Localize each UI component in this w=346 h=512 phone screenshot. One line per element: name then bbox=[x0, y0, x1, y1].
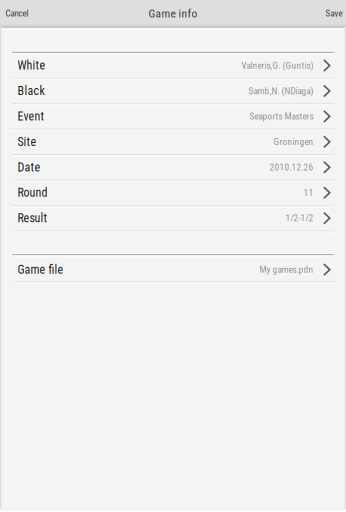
staticText: Samb,N. (NDiaga) bbox=[249, 85, 314, 96]
staticText: Round bbox=[18, 186, 48, 200]
staticText: Valneris,G. (Guntis) bbox=[242, 60, 314, 71]
staticText: My games.pdn bbox=[260, 264, 314, 275]
button[interactable]: Event bbox=[0, 104, 346, 129]
button[interactable]: Site bbox=[0, 129, 346, 154]
staticText: Game info bbox=[148, 7, 197, 20]
staticText: 11 bbox=[304, 187, 314, 198]
button[interactable]: Game file bbox=[0, 256, 346, 283]
staticText: 1/2-1/2 bbox=[286, 213, 314, 224]
staticText: Seaports Masters bbox=[250, 111, 314, 122]
staticText: Date bbox=[18, 160, 41, 174]
staticText: Black bbox=[18, 84, 45, 98]
staticText: Save bbox=[326, 8, 343, 19]
staticText: Game file bbox=[18, 263, 64, 277]
button[interactable]: Save bbox=[320, 0, 346, 27]
staticText: Cancel bbox=[5, 8, 28, 19]
button[interactable]: Date bbox=[0, 155, 346, 180]
staticText: Groningen bbox=[274, 136, 314, 147]
staticText: Result bbox=[18, 211, 48, 225]
button[interactable]: Round bbox=[0, 180, 346, 205]
staticText: Event bbox=[18, 109, 45, 123]
button[interactable]: Result bbox=[0, 205, 346, 231]
staticText: 2010.12.26 bbox=[270, 162, 314, 173]
staticText: White bbox=[18, 58, 46, 73]
staticText: Site bbox=[18, 135, 37, 149]
button[interactable]: White bbox=[0, 53, 346, 78]
button[interactable]: Cancel bbox=[0, 0, 34, 27]
button[interactable]: Black bbox=[0, 78, 346, 104]
